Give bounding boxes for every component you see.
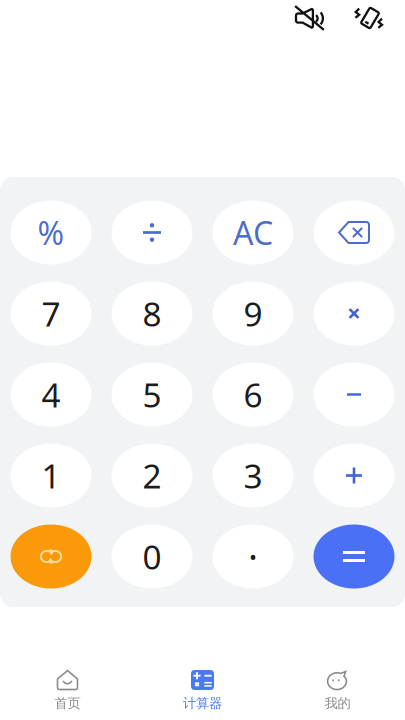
- button[interactable]: ·: [202, 516, 303, 597]
- staticText: %: [37, 211, 64, 254]
- staticText: ·: [248, 532, 258, 581]
- button[interactable]: 我的: [270, 607, 405, 720]
- button[interactable]: 计算器: [135, 607, 270, 720]
- staticText: 8: [142, 291, 161, 336]
- button[interactable]: [303, 192, 404, 273]
- button[interactable]: 0: [101, 516, 202, 597]
- button[interactable]: [0, 516, 101, 597]
- button[interactable]: 2: [101, 435, 202, 516]
- staticText: 7: [41, 291, 60, 336]
- button[interactable]: [101, 192, 202, 273]
- staticText: 0: [142, 534, 161, 579]
- button[interactable]: Sound off: [288, 0, 332, 36]
- button[interactable]: 1: [0, 435, 101, 516]
- button[interactable]: 首页: [0, 607, 135, 720]
- button[interactable]: Vibrate: [348, 0, 392, 36]
- staticText: 3: [243, 453, 262, 498]
- staticText: 6: [243, 372, 262, 417]
- button[interactable]: 5: [101, 354, 202, 435]
- button[interactable]: [303, 273, 404, 354]
- staticText: 2: [142, 453, 161, 498]
- button[interactable]: [303, 354, 404, 435]
- staticText: AC: [233, 211, 273, 254]
- button[interactable]: 7: [0, 273, 101, 354]
- button[interactable]: AC: [202, 192, 303, 273]
- staticText: 9: [243, 291, 262, 336]
- staticText: 我的: [324, 695, 350, 711]
- button[interactable]: 6: [202, 354, 303, 435]
- staticText: 4: [41, 372, 60, 417]
- staticText: 5: [142, 372, 161, 417]
- button[interactable]: %: [0, 192, 101, 273]
- button[interactable]: 8: [101, 273, 202, 354]
- button[interactable]: [303, 516, 404, 597]
- button[interactable]: 4: [0, 354, 101, 435]
- button[interactable]: 9: [202, 273, 303, 354]
- button[interactable]: [303, 435, 404, 516]
- staticText: 首页: [54, 695, 80, 711]
- staticText: 计算器: [183, 695, 222, 711]
- staticText: 1: [41, 453, 60, 498]
- button[interactable]: 3: [202, 435, 303, 516]
